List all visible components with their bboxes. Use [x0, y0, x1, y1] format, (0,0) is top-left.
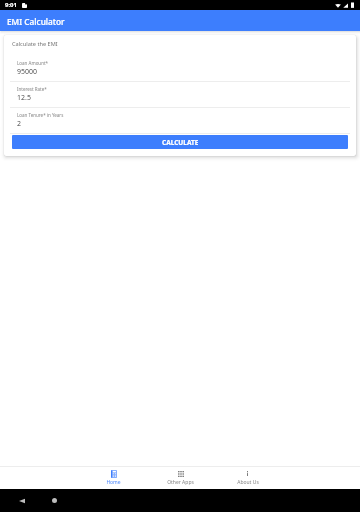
- staticText: 9:01: [5, 1, 17, 9]
- other: Other Apps: [178, 471, 184, 477]
- button[interactable]: CALCULATE: [12, 135, 348, 149]
- other: Home: [52, 498, 57, 503]
- button[interactable]: Loan Tenure* in Years: [12, 112, 348, 135]
- staticText: Interest Rate*: [17, 86, 47, 92]
- staticText: Calculate the EMI: [12, 40, 58, 48]
- staticText: EMI Calculator: [7, 16, 65, 27]
- button[interactable]: Other Apps: [147, 467, 214, 489]
- staticText: About Us: [237, 479, 259, 486]
- staticText: 95000: [17, 67, 38, 77]
- staticText: 12.5: [17, 93, 31, 103]
- other: About Us: [247, 471, 248, 476]
- other: Back: [19, 498, 25, 504]
- staticText: Home: [106, 479, 121, 486]
- staticText: 2: [17, 119, 22, 129]
- button[interactable]: Home: [80, 467, 147, 489]
- staticText: Loan Amount*: [17, 60, 49, 66]
- staticText: CALCULATE: [162, 138, 199, 147]
- staticText: Other Apps: [167, 479, 194, 486]
- other: Home: [111, 470, 117, 478]
- button[interactable]: Loan Amount*: [12, 60, 348, 86]
- staticText: Loan Tenure* in Years: [17, 112, 64, 118]
- button[interactable]: Interest Rate*: [12, 86, 348, 112]
- button[interactable]: About Us: [214, 467, 281, 489]
